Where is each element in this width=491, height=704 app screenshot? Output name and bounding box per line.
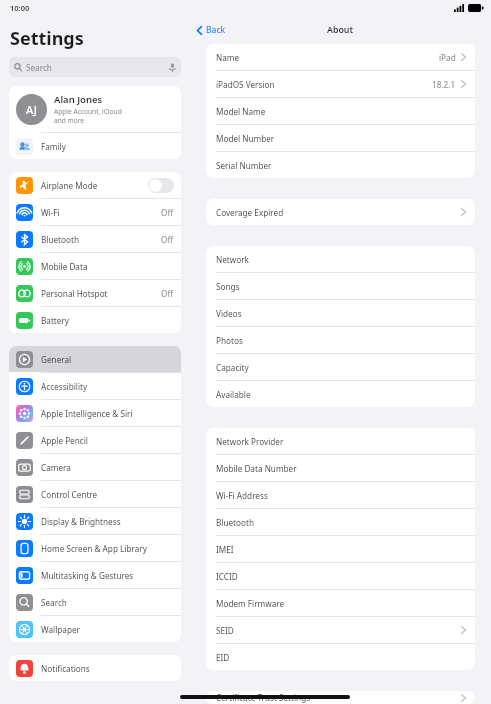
button[interactable]: Apple Pencil xyxy=(9,427,181,453)
staticText: Personal Hotspot xyxy=(41,288,161,299)
staticText: Apple Pencil xyxy=(41,435,174,446)
staticText: Off xyxy=(161,207,174,218)
staticText: Model Number xyxy=(216,133,467,144)
staticText: EID xyxy=(216,652,467,663)
staticText: Accessibility xyxy=(41,381,174,392)
staticText: Bluetooth xyxy=(216,517,467,528)
staticText: Alan Jones xyxy=(54,93,103,106)
staticText: Mobile Data Number xyxy=(216,463,467,474)
staticText: Multitasking & Gestures xyxy=(41,570,174,581)
staticText: Settings xyxy=(10,26,84,51)
staticText: Battery xyxy=(41,315,174,326)
staticText: Wallpaper xyxy=(41,624,174,635)
staticText: Control Centre xyxy=(41,489,174,500)
button[interactable]: Bluetooth xyxy=(9,226,181,252)
button[interactable]: Family xyxy=(9,133,181,159)
staticText: 10:00 xyxy=(10,3,30,13)
staticText: iPad xyxy=(439,52,456,63)
button[interactable]: Modem Firmware xyxy=(206,590,475,616)
button[interactable]: EID xyxy=(206,644,475,670)
button[interactable]: Display & Brightness xyxy=(9,508,181,534)
button[interactable]: Multitasking & Gestures xyxy=(9,562,181,588)
staticText: Capacity xyxy=(216,362,467,373)
staticText: 18.2.1 xyxy=(432,79,456,90)
button[interactable]: Back xyxy=(196,24,226,36)
staticText: Family xyxy=(41,141,174,152)
button[interactable]: iPadOS Version xyxy=(206,71,475,97)
button[interactable]: Wi-Fi Address xyxy=(206,482,475,508)
staticText: iPadOS Version xyxy=(216,79,432,90)
staticText: Modem Firmware xyxy=(216,598,467,609)
staticText: Airplane Mode xyxy=(41,180,148,191)
staticText: Available xyxy=(216,389,467,400)
button[interactable]: ICCID xyxy=(206,563,475,589)
staticText: Off xyxy=(161,288,174,299)
button[interactable]: Notifications xyxy=(9,655,181,681)
button[interactable]: Airplane Mode xyxy=(9,172,181,198)
button[interactable]: Home Screen & App Library xyxy=(9,535,181,561)
staticText: ICCID xyxy=(216,571,467,582)
button[interactable]: Mobile Data xyxy=(9,253,181,279)
staticText: Display & Brightness xyxy=(41,516,174,527)
button[interactable]: Photos xyxy=(206,327,475,353)
button[interactable]: Bluetooth xyxy=(206,509,475,535)
button[interactable]: Search xyxy=(9,589,181,615)
staticText: Notifications xyxy=(41,663,174,674)
button[interactable]: Network xyxy=(206,246,475,272)
staticText: Network xyxy=(216,254,467,265)
button[interactable]: SEID xyxy=(206,617,475,643)
staticText: Home Screen & App Library xyxy=(41,543,174,554)
button[interactable]: Mobile Data Number xyxy=(206,455,475,481)
button[interactable]: Model Name xyxy=(206,98,475,124)
staticText: Songs xyxy=(216,281,467,292)
button[interactable]: Available xyxy=(206,381,475,407)
button[interactable]: Battery xyxy=(9,307,181,333)
staticText: AJ xyxy=(26,102,37,117)
staticText: Apple Account, iCloud xyxy=(54,107,122,116)
button[interactable]: General xyxy=(9,346,181,372)
button[interactable]: Capacity xyxy=(206,354,475,380)
staticText: Apple Intelligence & Siri xyxy=(41,408,174,419)
button[interactable]: Network Provider xyxy=(206,428,475,454)
staticText: Off xyxy=(161,234,174,245)
staticText: Search xyxy=(26,62,169,73)
button[interactable]: Certificate Trust Settings xyxy=(206,691,475,704)
button[interactable]: Accessibility xyxy=(9,373,181,399)
staticText: Camera xyxy=(41,462,174,473)
button[interactable]: Name xyxy=(206,44,475,70)
staticText: Serial Number xyxy=(216,160,467,171)
staticText: Search xyxy=(41,597,174,608)
button[interactable]: Search xyxy=(9,57,181,77)
button[interactable]: Songs xyxy=(206,273,475,299)
staticText: Certificate Trust Settings xyxy=(216,692,460,703)
staticText: Wi-Fi Address xyxy=(216,490,467,501)
button[interactable]: Coverage Expired xyxy=(206,199,475,225)
staticText: IMEI xyxy=(216,544,467,555)
staticText: Network Provider xyxy=(216,436,467,447)
button[interactable]: Model Number xyxy=(206,125,475,151)
staticText: Model Name xyxy=(216,106,467,117)
staticText: Bluetooth xyxy=(41,234,161,245)
staticText: Name xyxy=(216,52,439,63)
staticText: and more xyxy=(54,116,85,125)
staticText: Mobile Data xyxy=(41,261,174,272)
button[interactable]: Control Centre xyxy=(9,481,181,507)
button[interactable]: Wi-Fi xyxy=(9,199,181,225)
button[interactable]: Personal Hotspot xyxy=(9,280,181,306)
staticText: SEID xyxy=(216,625,460,636)
staticText: Coverage Expired xyxy=(216,207,460,218)
button[interactable]: Wallpaper xyxy=(9,616,181,642)
button[interactable]: Airplane Mode toggle xyxy=(148,178,174,193)
button[interactable]: Videos xyxy=(206,300,475,326)
staticText: Back xyxy=(206,24,226,36)
button[interactable]: Serial Number xyxy=(206,152,475,178)
button[interactable]: Camera xyxy=(9,454,181,480)
staticText: Videos xyxy=(216,308,467,319)
staticText: Wi-Fi xyxy=(41,207,161,218)
staticText: Photos xyxy=(216,335,467,346)
button[interactable]: AJ xyxy=(9,86,181,132)
staticText: About xyxy=(327,24,354,36)
button[interactable]: IMEI xyxy=(206,536,475,562)
button[interactable]: Apple Intelligence & Siri xyxy=(9,400,181,426)
staticText: General xyxy=(41,354,174,365)
